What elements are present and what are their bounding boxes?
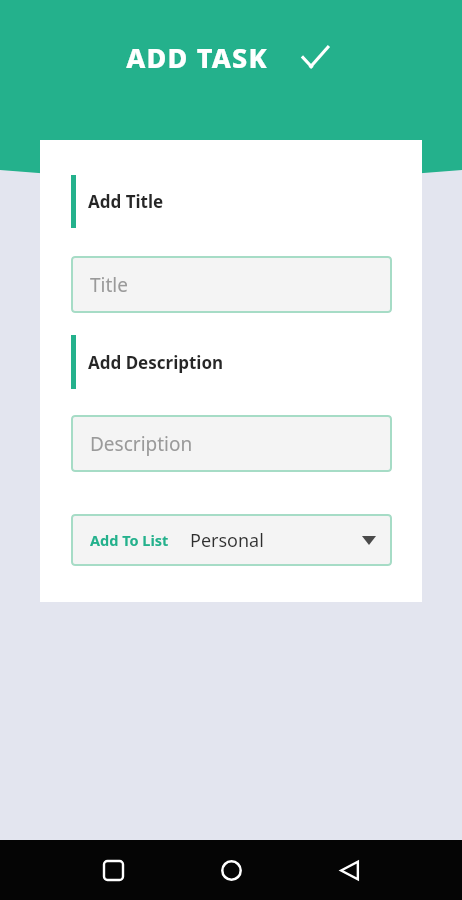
staticText: Add Title (88, 190, 164, 213)
staticText: Personal (190, 528, 264, 553)
button[interactable]: Title (71, 256, 392, 313)
staticText: ADD TASK (126, 39, 268, 76)
button[interactable]: Description (71, 415, 392, 472)
button[interactable]: Back (325, 846, 373, 894)
staticText: Description (90, 431, 193, 457)
button[interactable]: Recent apps (89, 846, 137, 894)
button[interactable]: Home (207, 846, 255, 894)
staticText: Add To List (90, 530, 169, 550)
staticText: Add Description (88, 351, 224, 374)
button[interactable]: Save task (294, 36, 336, 78)
button[interactable]: Add To List (71, 514, 392, 566)
staticText: Title (90, 272, 128, 298)
